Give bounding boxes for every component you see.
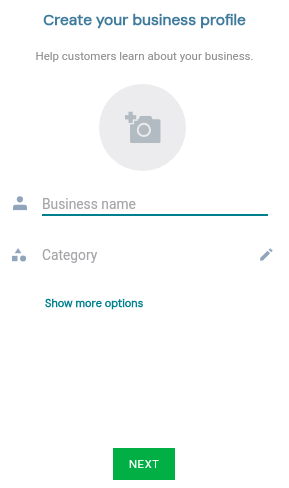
button[interactable]: Category [0,241,289,269]
button[interactable]: Show more options [45,296,144,310]
staticText: Help customers learn about your business… [0,49,289,62]
staticText: Business name [42,196,136,212]
button[interactable]: NEXT [113,448,175,480]
button[interactable]: Edit category [255,241,279,269]
staticText: Show more options [45,296,144,310]
button[interactable]: Add business photo [99,84,186,171]
staticText: NEXT [129,457,160,472]
staticText: Category [42,247,98,263]
button[interactable]: Business name [0,188,289,220]
staticText: Create your business profile [0,10,289,30]
